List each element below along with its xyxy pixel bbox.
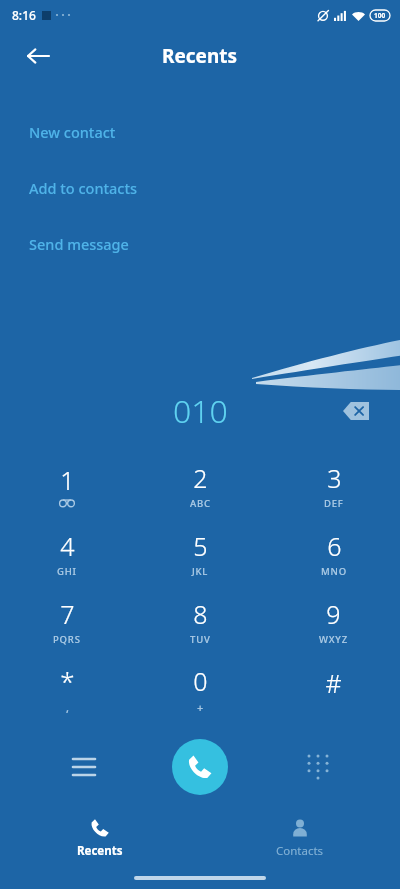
button[interactable]: Add to contacts xyxy=(0,174,400,202)
button[interactable]: New contact xyxy=(0,118,400,146)
staticText: Recents xyxy=(162,43,238,69)
staticText: 8:16 xyxy=(12,7,36,23)
button[interactable]: 4 xyxy=(0,519,134,587)
button[interactable]: Call xyxy=(172,739,228,795)
staticText: GHI xyxy=(57,565,77,578)
button[interactable]: 0 xyxy=(134,655,267,723)
staticText: WXYZ xyxy=(319,633,348,646)
staticText: 9 xyxy=(326,597,341,631)
staticText: 7 xyxy=(60,597,75,631)
staticText: + xyxy=(197,700,205,715)
staticText: 0 xyxy=(193,664,208,698)
staticText: PQRS xyxy=(53,633,81,646)
staticText: , xyxy=(66,700,70,715)
button[interactable]: 7 xyxy=(0,587,134,655)
button[interactable]: Keypad xyxy=(294,743,342,791)
button[interactable]: Backspace xyxy=(334,389,378,433)
staticText: 010 xyxy=(173,389,228,433)
button[interactable]: # xyxy=(267,655,400,723)
staticText: MNO xyxy=(321,565,347,578)
staticText: 8 xyxy=(193,597,208,631)
button[interactable]: Call log xyxy=(60,743,108,791)
staticText: Send message xyxy=(29,234,129,254)
staticText: 100 xyxy=(374,11,386,20)
staticText: * xyxy=(60,663,75,698)
staticText: # xyxy=(325,666,342,700)
staticText: 3 xyxy=(327,461,342,495)
button[interactable]: Back xyxy=(14,32,62,80)
staticText: ABC xyxy=(190,497,211,510)
staticText: 6 xyxy=(327,529,342,563)
staticText: 4 xyxy=(60,529,75,563)
staticText: DEF xyxy=(324,497,344,510)
staticText: 2 xyxy=(193,461,208,495)
staticText: Add to contacts xyxy=(29,178,138,198)
button[interactable]: 1 xyxy=(0,451,134,519)
staticText: JKL xyxy=(192,565,209,578)
button[interactable]: 3 xyxy=(267,451,400,519)
button[interactable]: Contacts xyxy=(200,809,400,867)
button[interactable]: 6 xyxy=(267,519,400,587)
button[interactable]: 9 xyxy=(267,587,400,655)
staticText: Recents xyxy=(77,843,123,859)
staticText: 5 xyxy=(193,529,208,563)
button[interactable]: 5 xyxy=(134,519,267,587)
button[interactable]: Recents xyxy=(0,809,200,867)
button[interactable]: * xyxy=(0,655,134,723)
staticText: TUV xyxy=(190,633,211,646)
staticText: 1 xyxy=(60,463,75,497)
button[interactable]: Send message xyxy=(0,230,400,258)
staticText: Contacts xyxy=(276,843,324,859)
button[interactable]: 8 xyxy=(134,587,267,655)
button[interactable]: 2 xyxy=(134,451,267,519)
staticText: New contact xyxy=(29,122,116,142)
